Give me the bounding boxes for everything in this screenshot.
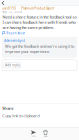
staticText: Report abuse bbox=[6, 32, 25, 35]
button[interactable]: Delete bbox=[40, 130, 50, 137]
button[interactable]: Back bbox=[0, 1, 6, 5]
staticText: Acknowledged bbox=[4, 39, 25, 42]
button[interactable]: Add reply bbox=[4, 63, 21, 68]
staticText: Need a share feature in the feedback too… bbox=[2, 14, 76, 30]
staticText: Share bbox=[2, 106, 13, 111]
staticText: user0193 · Platinum Product Expert bbox=[2, 7, 54, 10]
staticText: Add reply bbox=[5, 64, 19, 67]
button[interactable]: Copy link to clipboard bbox=[0, 111, 79, 121]
staticText: Delete bbox=[43, 135, 47, 137]
staticText: Copy link to clipboard bbox=[2, 113, 39, 118]
staticText: Sep 12, 2024 bbox=[2, 10, 22, 14]
button[interactable]: Send bbox=[28, 130, 38, 137]
staticText: We got the feedback and we're using it t… bbox=[5, 44, 74, 54]
staticText: Send bbox=[31, 135, 35, 137]
button[interactable]: Report abuse bbox=[2, 30, 77, 35]
